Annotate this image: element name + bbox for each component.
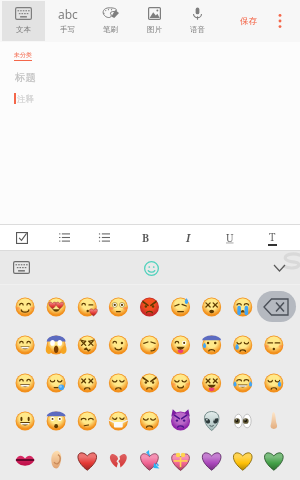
staticText: 语音: [190, 25, 205, 34]
staticText: 手写: [60, 25, 75, 34]
button[interactable]: 保存: [232, 0, 264, 42]
button[interactable]: Collapse keyboard: [267, 256, 291, 280]
staticText: U: [226, 231, 234, 245]
staticText: 笔刷: [103, 25, 118, 34]
staticText: abc: [58, 6, 78, 20]
staticText: 注释: [17, 94, 34, 105]
button[interactable]: 笔刷: [89, 0, 132, 42]
button[interactable]: 语音: [176, 0, 219, 42]
button[interactable]: 图片: [133, 0, 176, 42]
button[interactable]: Emoji: [139, 256, 163, 280]
staticText: 保存: [240, 16, 257, 27]
staticText: T: [269, 230, 276, 244]
button[interactable]: abc: [46, 0, 89, 42]
button[interactable]: Underline: [212, 225, 248, 250]
button[interactable]: Text color: [254, 225, 290, 250]
button[interactable]: Checklist: [4, 225, 40, 250]
staticText: 图片: [147, 25, 162, 34]
staticText: I: [186, 231, 191, 245]
staticText: B: [142, 231, 150, 245]
staticText: 未分类: [14, 51, 32, 59]
staticText: 标题: [15, 71, 36, 84]
staticText: 文本: [16, 25, 31, 34]
button[interactable]: Bold: [128, 225, 164, 250]
button[interactable]: 未分类: [14, 51, 32, 61]
button[interactable]: Keyboard: [9, 255, 33, 279]
button[interactable]: Italic: [170, 225, 206, 250]
button[interactable]: Bulleted list: [86, 225, 122, 250]
button[interactable]: Numbered list: [46, 225, 82, 250]
button[interactable]: More options: [268, 0, 292, 42]
button[interactable]: 文本: [2, 0, 45, 42]
